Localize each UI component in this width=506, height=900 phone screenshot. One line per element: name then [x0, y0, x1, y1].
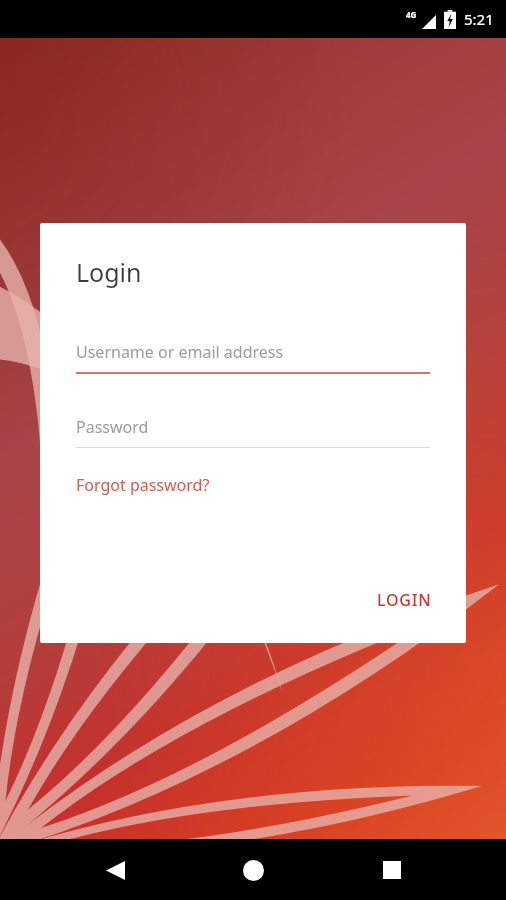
staticText: 4G — [406, 9, 417, 20]
button[interactable]: Forgot password? — [76, 474, 210, 496]
button[interactable]: Home — [229, 846, 277, 894]
button[interactable]: Recent apps — [368, 846, 416, 894]
button[interactable]: Password — [76, 416, 430, 448]
button[interactable]: Username or email address — [76, 341, 430, 374]
button[interactable]: LOGIN — [365, 581, 444, 619]
staticText: 5:21 — [464, 9, 494, 29]
button[interactable]: Back — [91, 846, 139, 894]
staticText: Forgot password? — [76, 474, 210, 496]
staticText: Password — [76, 416, 149, 438]
staticText: Username or email address — [76, 341, 284, 363]
staticText: LOGIN — [377, 589, 432, 611]
staticText: Login — [76, 255, 142, 289]
